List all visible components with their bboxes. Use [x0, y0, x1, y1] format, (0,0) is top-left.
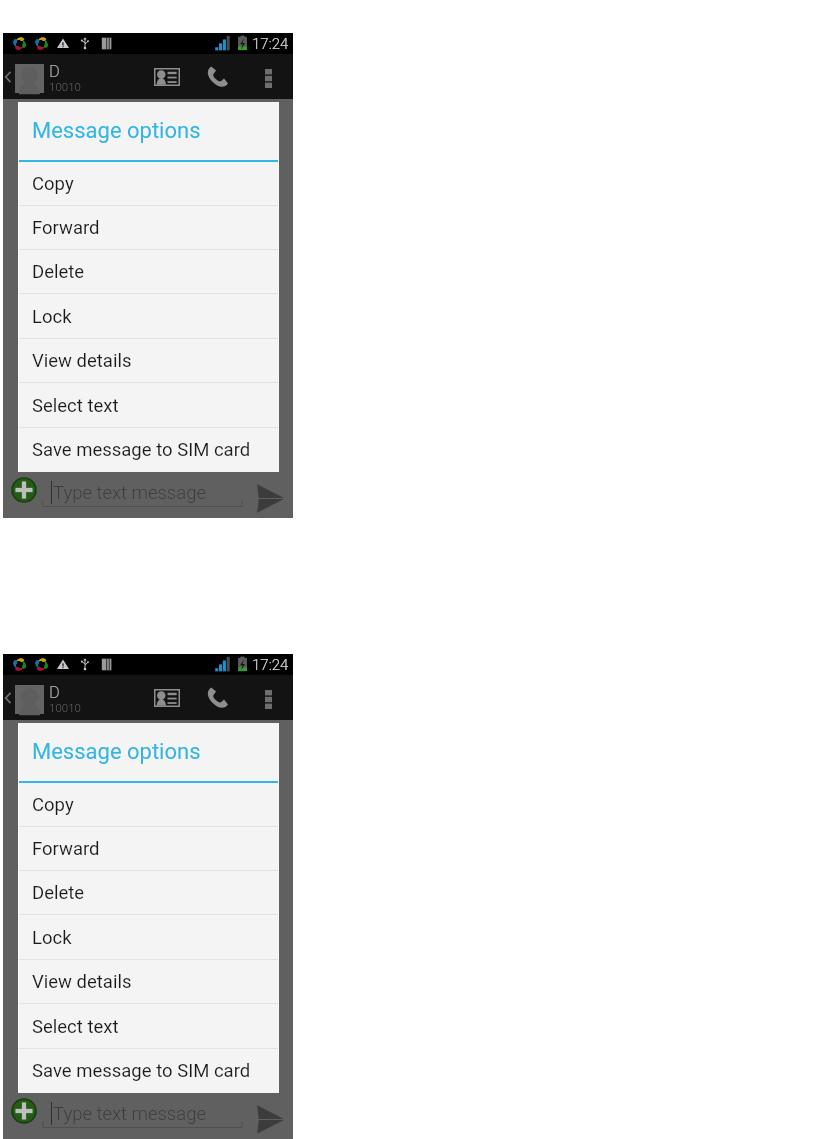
button[interactable]: Lock [18, 294, 279, 339]
staticText: View details [32, 971, 132, 993]
button[interactable]: Add attachment [12, 478, 36, 502]
staticText: 17:24 [252, 656, 289, 674]
button[interactable]: View details [18, 339, 279, 383]
button[interactable]: Add attachment [12, 1099, 36, 1123]
button[interactable]: Delete [18, 871, 279, 915]
button[interactable]: More options [251, 675, 286, 720]
staticText: 10010 [49, 80, 81, 93]
button[interactable]: Save message to SIM card [18, 428, 279, 472]
staticText: D [49, 683, 60, 702]
staticText: Type text message [53, 1103, 206, 1125]
staticText: Type text message [53, 482, 206, 504]
button[interactable]: Delete [18, 250, 279, 294]
staticText: D [49, 62, 60, 81]
button[interactable]: Save message to SIM card [18, 1049, 279, 1093]
button[interactable]: Select text [18, 1004, 279, 1049]
staticText: Delete [32, 882, 85, 904]
staticText: 10010 [49, 701, 81, 714]
button[interactable]: Copy [18, 783, 279, 827]
button[interactable]: Select text [18, 383, 279, 428]
staticText: Message options [32, 118, 201, 144]
button[interactable]: Send [253, 1104, 287, 1135]
staticText: Select text [32, 1016, 119, 1038]
button[interactable]: More options [251, 54, 286, 99]
button[interactable]: Copy [18, 162, 279, 206]
button[interactable]: Back [3, 675, 15, 720]
button[interactable]: Forward [18, 206, 279, 250]
button[interactable]: View details [18, 960, 279, 1004]
staticText: View details [32, 350, 132, 372]
button[interactable]: Call [196, 675, 237, 720]
staticText: Forward [32, 838, 100, 860]
staticText: Lock [32, 927, 72, 949]
button[interactable]: Forward [18, 827, 279, 871]
staticText: Select text [32, 395, 119, 417]
staticText: Copy [32, 794, 74, 816]
button[interactable]: Lock [18, 915, 279, 960]
staticText: Message options [32, 739, 201, 765]
staticText: Forward [32, 217, 100, 239]
button[interactable]: Call [196, 54, 237, 99]
staticText: 17:24 [252, 35, 289, 53]
button[interactable]: Back [3, 54, 15, 99]
staticText: Save message to SIM card [32, 1060, 251, 1082]
button[interactable]: Contact details [143, 54, 191, 99]
staticText: Save message to SIM card [32, 439, 251, 461]
staticText: Copy [32, 173, 74, 195]
button[interactable]: Contact details [143, 675, 191, 720]
staticText: Delete [32, 261, 85, 283]
button[interactable]: Send [253, 483, 287, 514]
staticText: Lock [32, 306, 72, 328]
